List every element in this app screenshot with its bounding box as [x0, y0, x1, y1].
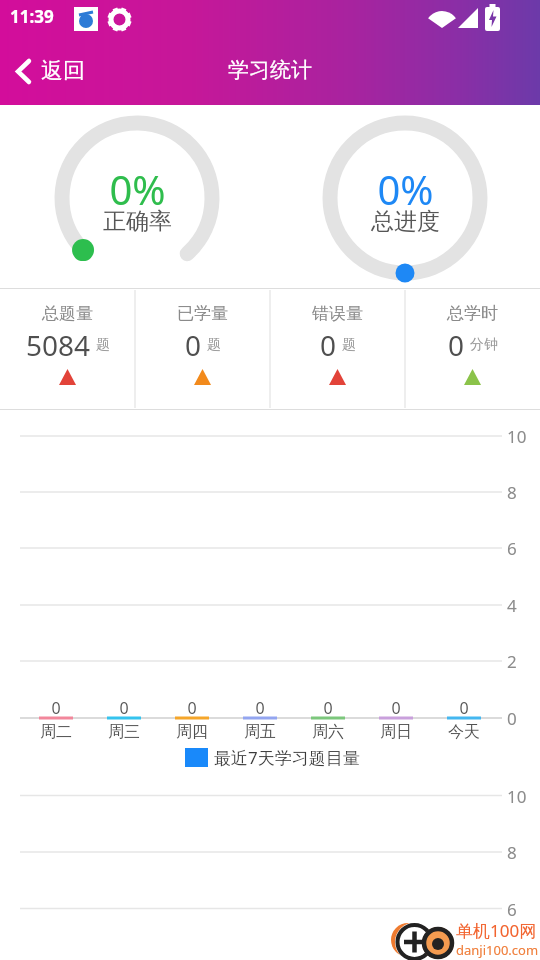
staticText: 周五 — [244, 722, 276, 742]
staticText: 2 — [507, 650, 517, 673]
staticText: 题 — [342, 336, 356, 354]
staticText: 分钟 — [470, 336, 498, 354]
staticText: 周二 — [40, 722, 72, 742]
staticText: 10 — [507, 785, 527, 808]
staticText: 学习统计 — [228, 57, 312, 83]
staticText: 0 — [255, 697, 265, 719]
staticText: 单机100网 — [456, 919, 537, 942]
staticText: 周三 — [108, 722, 140, 742]
staticText: 0 — [323, 697, 333, 719]
staticText: 最近7天学习题目量 — [214, 746, 360, 768]
staticText: 8 — [507, 841, 517, 864]
staticText: 0 — [119, 697, 129, 719]
staticText: 4 — [507, 594, 517, 617]
staticText: 总进度 — [371, 207, 440, 236]
staticText: 题 — [207, 336, 221, 354]
staticText: 0% — [377, 162, 434, 216]
staticText: 0 — [391, 697, 401, 719]
staticText: 已学量 — [177, 303, 228, 324]
button[interactable]: 总学时 — [405, 288, 540, 410]
staticText: 6 — [507, 898, 517, 921]
staticText: 题 — [96, 336, 110, 354]
button[interactable]: 错误量 — [270, 288, 405, 410]
staticText: 0 — [459, 697, 469, 719]
staticText: 周日 — [380, 722, 412, 742]
staticText: 错误量 — [312, 303, 363, 324]
staticText: 0 — [51, 697, 61, 719]
staticText: 0 — [448, 326, 465, 364]
staticText: danji100.com — [456, 941, 539, 959]
staticText: 11:39 — [10, 5, 54, 28]
staticText: 0 — [185, 326, 202, 364]
staticText: 周六 — [312, 722, 344, 742]
staticText: 8 — [507, 481, 517, 504]
staticText: 今天 — [448, 722, 480, 742]
staticText: 正确率 — [103, 207, 172, 236]
staticText: 返回 — [41, 57, 85, 85]
staticText: 周四 — [176, 722, 208, 742]
button[interactable]: 返回 — [13, 51, 85, 91]
staticText: 0 — [507, 707, 517, 730]
button[interactable]: 已学量 — [135, 288, 270, 410]
staticText: 10 — [507, 425, 527, 448]
staticText: 0% — [109, 162, 166, 216]
staticText: 5084 — [26, 326, 91, 364]
button[interactable]: 最近7天学习题目量 — [185, 746, 360, 768]
staticText: 0 — [187, 697, 197, 719]
staticText: 总题量 — [42, 303, 93, 324]
button[interactable]: 总题量 — [0, 288, 135, 410]
staticText: 6 — [507, 537, 517, 560]
staticText: 0 — [320, 326, 337, 364]
staticText: 总学时 — [447, 303, 498, 324]
